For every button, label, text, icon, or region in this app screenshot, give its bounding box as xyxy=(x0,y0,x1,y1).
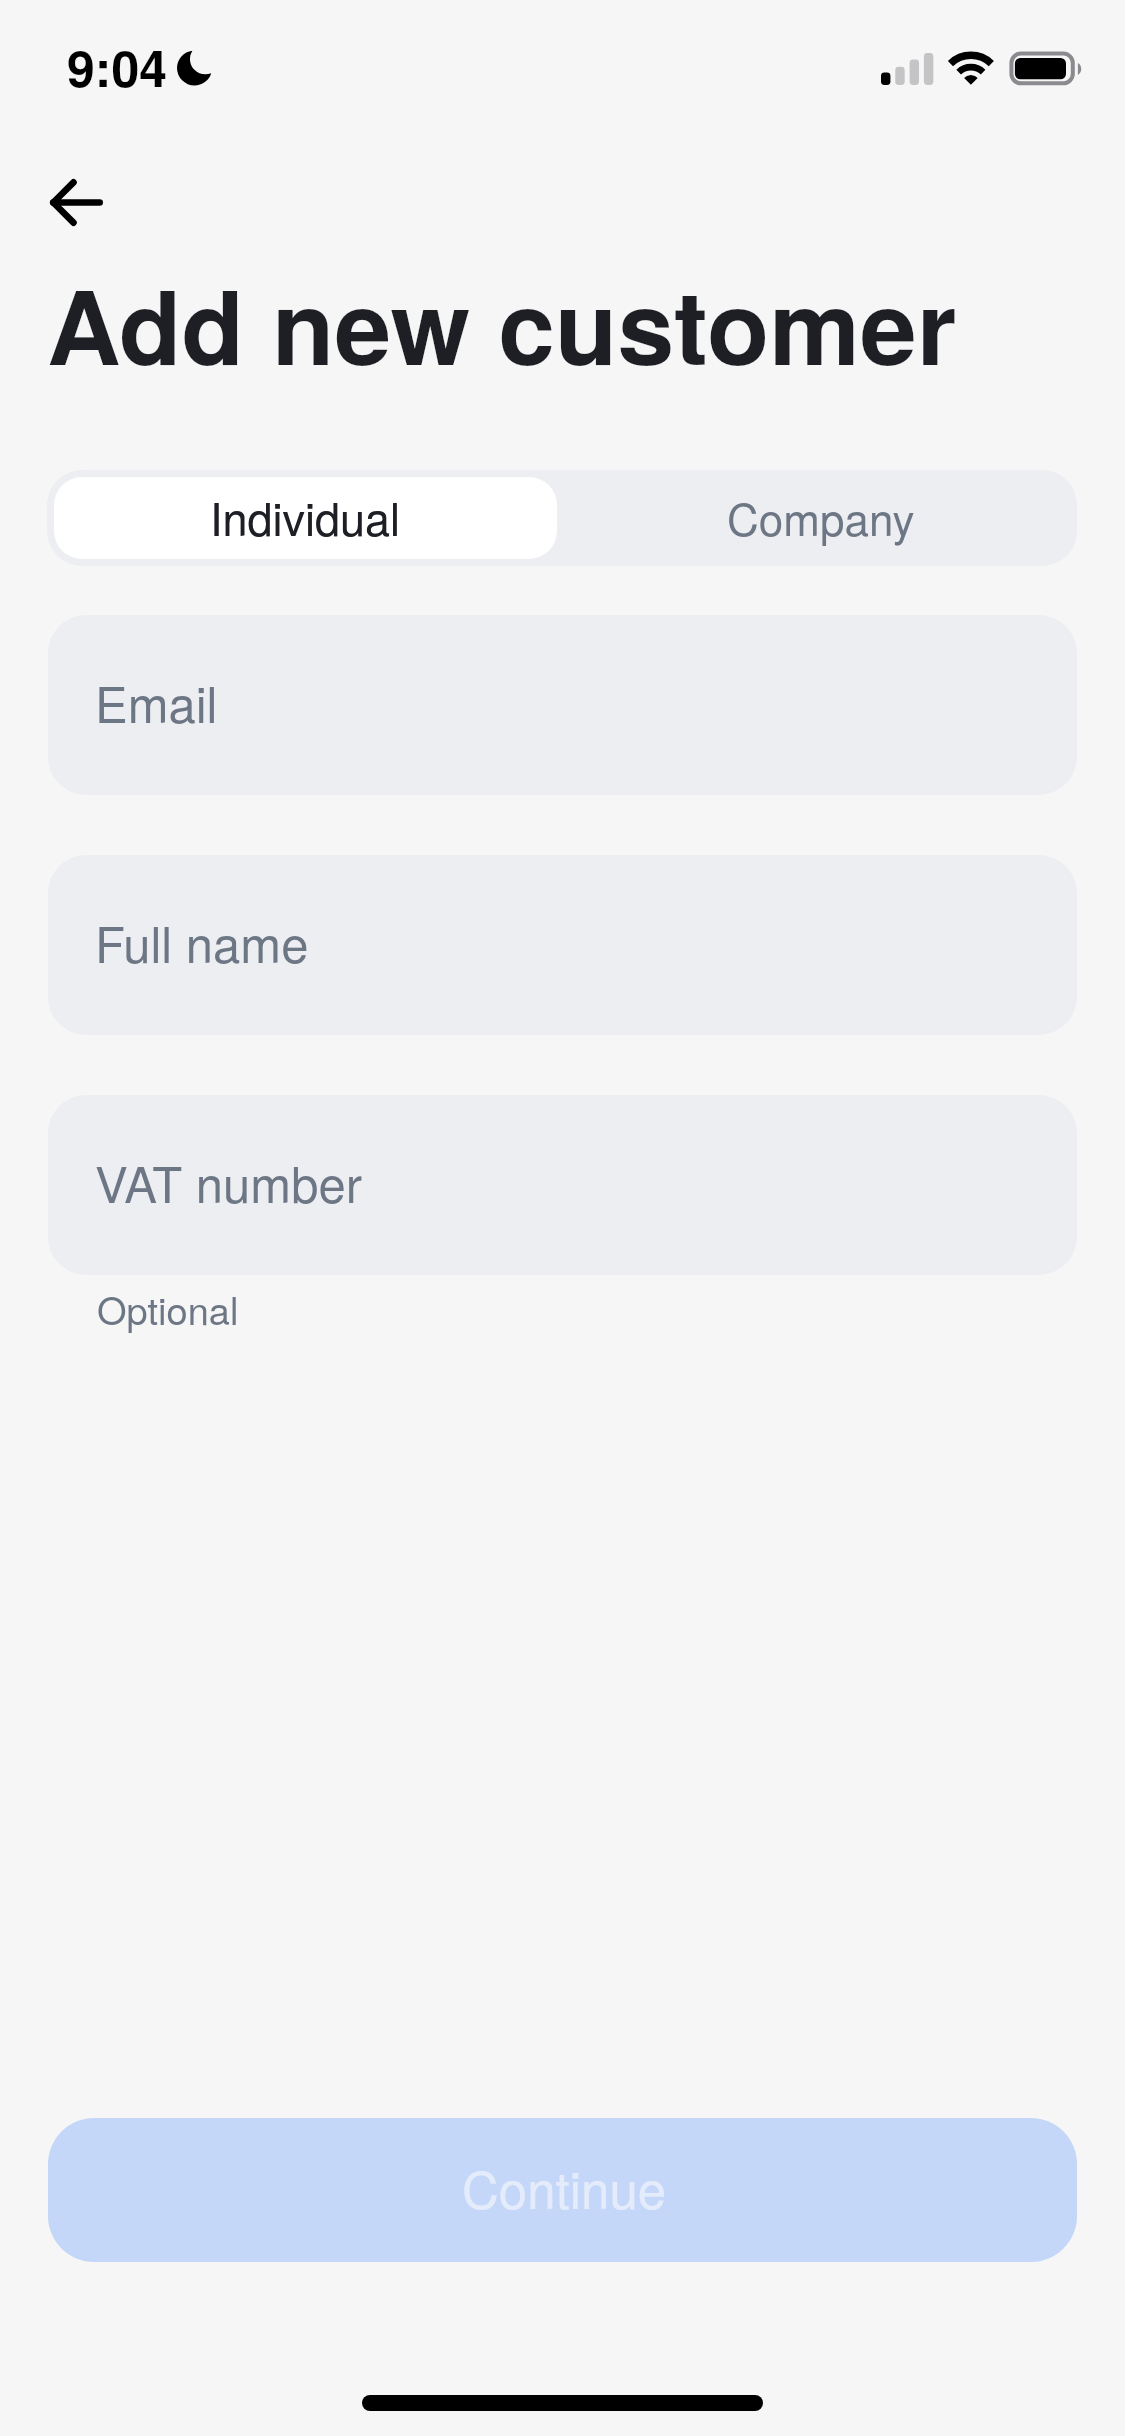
staticText: Company xyxy=(727,485,915,548)
staticText: Add new customer xyxy=(47,250,957,396)
button[interactable]: Individual xyxy=(54,477,557,559)
button[interactable]: Company xyxy=(564,477,1070,559)
staticText: Optional xyxy=(97,1281,239,1335)
button[interactable]: Continue xyxy=(48,2118,1077,2262)
button[interactable]: Back xyxy=(24,160,128,244)
button[interactable]: Email xyxy=(48,615,1077,795)
staticText: Email xyxy=(95,667,218,737)
staticText: Individual xyxy=(210,484,401,548)
staticText: Individual xyxy=(210,484,401,548)
button[interactable]: VAT number xyxy=(48,1095,1077,1275)
staticText: Continue xyxy=(462,2150,667,2223)
staticText: Full name xyxy=(95,907,309,977)
button[interactable]: Full name xyxy=(48,855,1077,1035)
staticText: 9:04 xyxy=(67,31,168,103)
staticText: VAT number xyxy=(95,1147,362,1217)
